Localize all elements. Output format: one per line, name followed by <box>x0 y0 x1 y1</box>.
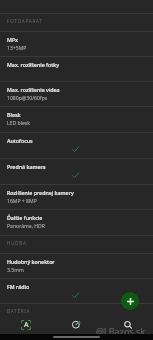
button[interactable]: FM rádio <box>0 279 153 304</box>
staticText: 16MP + 8MP <box>7 198 37 205</box>
staticText: @l Bazos.sk <box>96 325 146 337</box>
staticText: Autofocus <box>7 137 33 144</box>
staticText: Blesk <box>7 111 21 118</box>
staticText: LED blesk <box>7 120 31 127</box>
staticText: Max. rozlíšenie fotky <box>7 61 59 68</box>
button[interactable]: Benchmark <box>51 316 102 334</box>
staticText: Panoráma, HDR <box>7 223 45 230</box>
button[interactable]: Predná kamera <box>0 159 153 185</box>
button[interactable]: Max. rozlíšenie videa <box>0 82 153 107</box>
button[interactable]: Blesk <box>0 107 153 133</box>
staticText: BATÉRIA <box>7 308 31 314</box>
staticText: A <box>24 320 29 330</box>
staticText: Ďalšie funkcie <box>7 214 43 221</box>
button[interactable]: MPx <box>0 32 153 57</box>
staticText: FM rádio <box>7 283 30 290</box>
staticText: MPx <box>7 36 18 43</box>
button[interactable]: Search <box>102 316 153 334</box>
button[interactable]: Add <box>121 292 139 310</box>
staticText: 13+5MP <box>7 45 27 52</box>
staticText: Hudobný konektor <box>7 258 55 265</box>
button[interactable]: Device specs <box>0 316 51 334</box>
button[interactable]: Hudobný konektor <box>0 254 153 279</box>
button[interactable]: Autofocus <box>0 133 153 159</box>
staticText: Predná kamera <box>7 163 46 170</box>
staticText: Max. rozlíšenie videa <box>7 86 60 93</box>
staticText: 3.5mm <box>7 267 24 274</box>
staticText: 1080p@30/60fps <box>7 95 48 102</box>
staticText: Rozlíšenie prednej kamery <box>7 189 74 196</box>
staticText: HUDBA <box>7 240 27 246</box>
button[interactable]: Ďalšie funkcie <box>0 210 153 236</box>
staticText: FOTOAPARÁT <box>7 18 43 24</box>
button[interactable]: Max. rozlíšenie fotky <box>0 57 153 82</box>
button[interactable]: Rozlíšenie prednej kamery <box>0 185 153 210</box>
